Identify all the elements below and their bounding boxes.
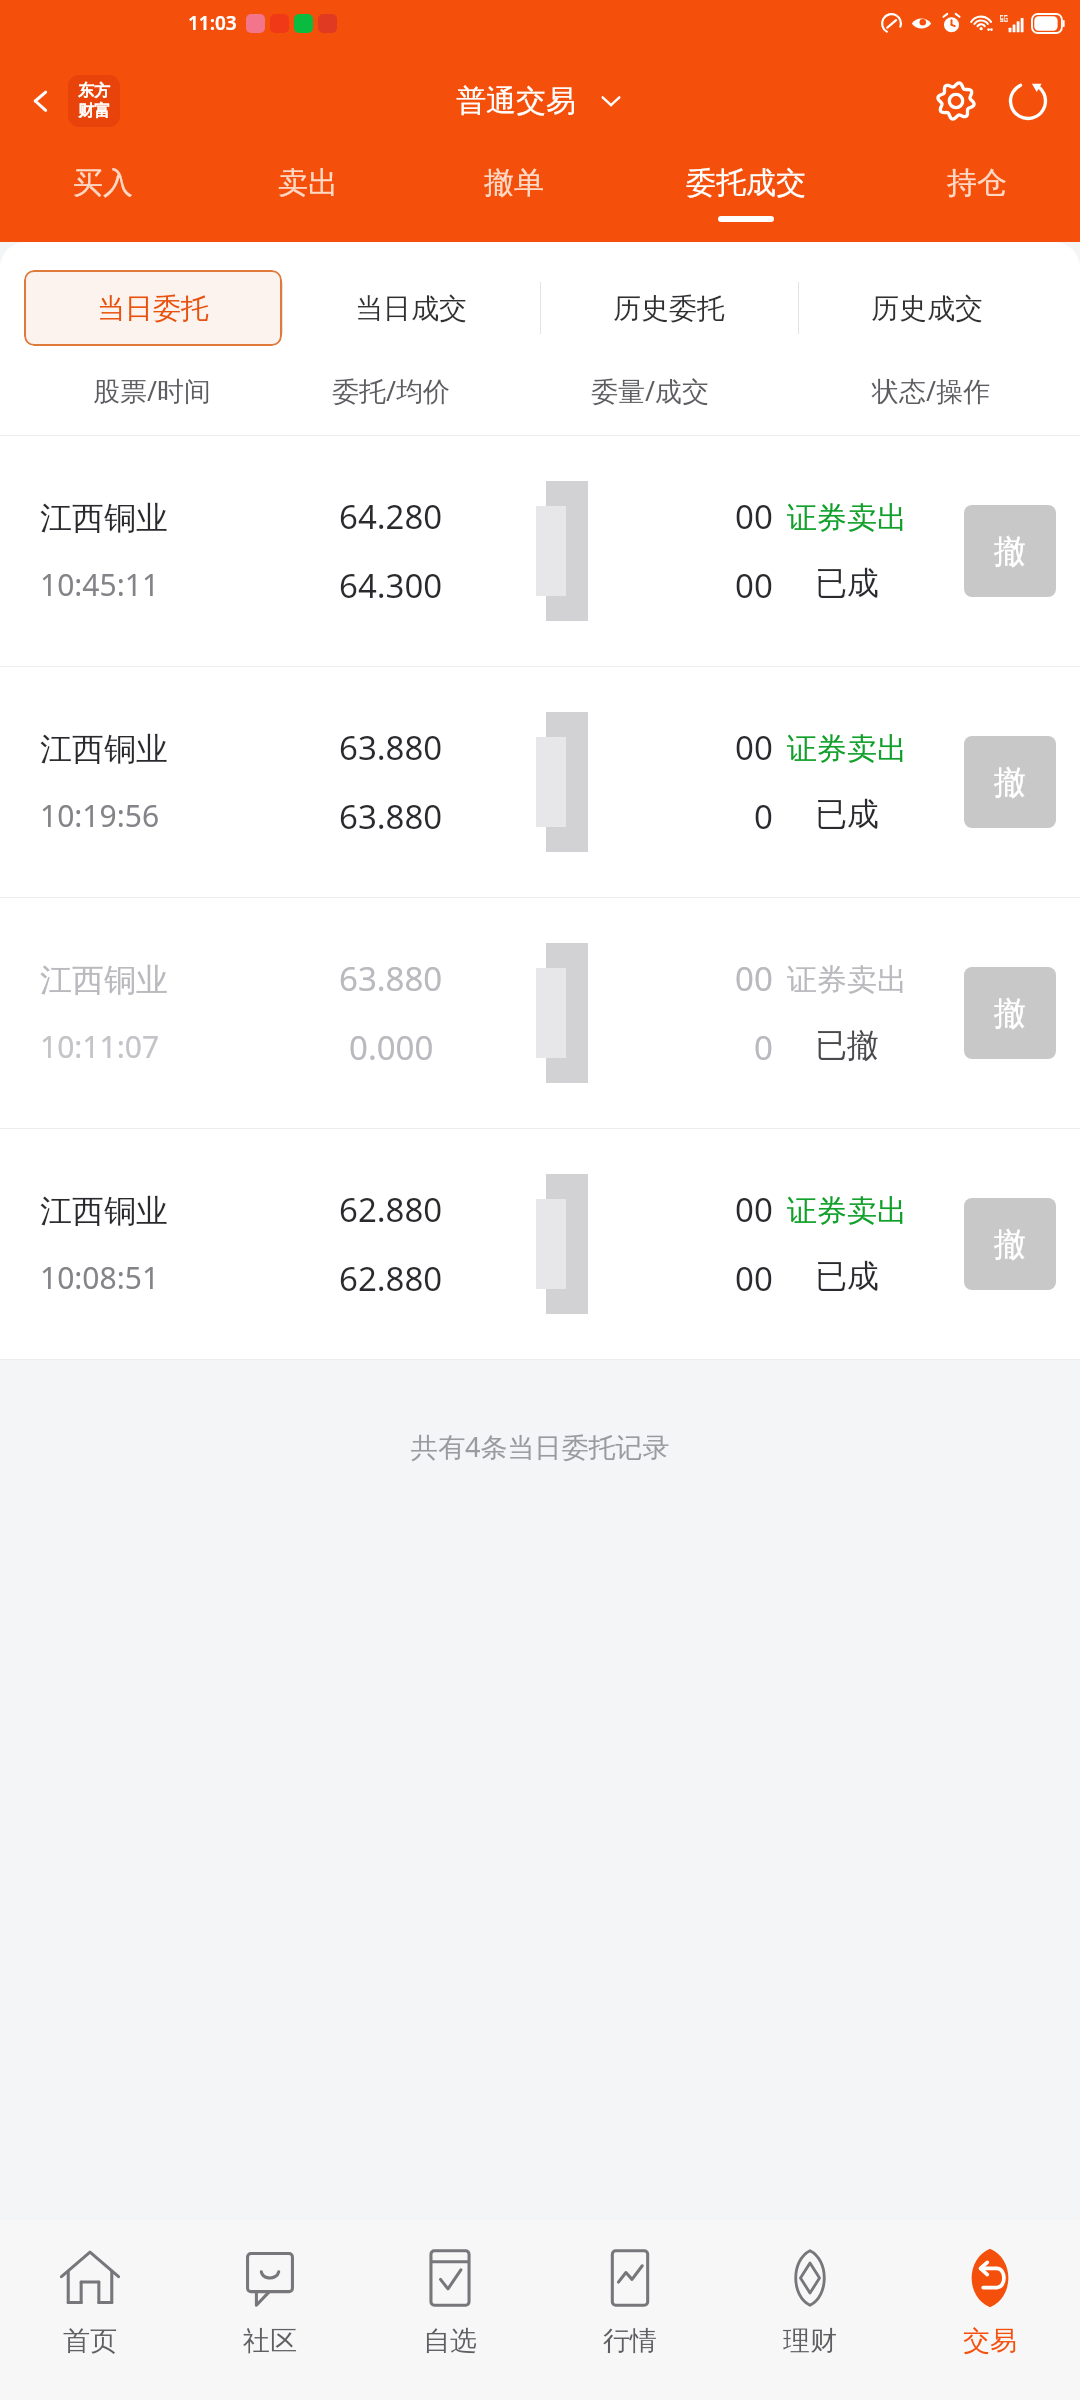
button[interactable]: 首页 <box>0 2242 180 2360</box>
staticText: 63.880 <box>339 794 443 839</box>
button[interactable]: 历史委托 <box>540 270 798 346</box>
staticText: 卖出 <box>278 164 338 202</box>
staticText: 首页 <box>63 2324 117 2358</box>
staticText: 交易 <box>963 2324 1017 2358</box>
button[interactable]: 当日成交 <box>282 270 540 346</box>
staticText: 股票/时间 <box>93 372 212 409</box>
staticText: 10:11:07 <box>40 1026 160 1067</box>
staticText: 当日成交 <box>355 291 467 326</box>
staticText: 委托成交 <box>686 164 806 202</box>
staticText: 0.000 <box>349 1025 434 1070</box>
staticText: 11:03 <box>188 10 237 36</box>
staticText: 社区 <box>243 2324 297 2358</box>
staticText: 江西铜业 <box>40 498 168 538</box>
button[interactable]: 社区 <box>180 2242 360 2360</box>
button[interactable]: 买入 <box>0 160 205 226</box>
staticText: 证券卖出 <box>787 961 907 999</box>
staticText: 62.880 <box>339 1187 443 1232</box>
staticText: 行情 <box>603 2324 657 2358</box>
staticText: 00 <box>735 1256 773 1301</box>
staticText: 江西铜业 <box>40 729 168 769</box>
staticText: 撤单 <box>484 164 544 202</box>
button[interactable]: 卖出 <box>205 160 411 226</box>
staticText: 00 <box>735 563 773 608</box>
staticText: 撤 <box>994 531 1026 571</box>
staticText: 64.280 <box>339 494 443 539</box>
staticText: 64.300 <box>339 563 443 608</box>
staticText: 撤 <box>994 762 1026 802</box>
staticText: 00 <box>735 956 773 1001</box>
button[interactable]: 当日委托 <box>24 270 282 346</box>
staticText: 历史成交 <box>871 291 983 326</box>
staticText: 已撤 <box>815 1025 879 1065</box>
staticText: 62.880 <box>339 1256 443 1301</box>
staticText: 委量/成交 <box>591 372 710 409</box>
button[interactable]: 刷新 <box>1002 75 1054 127</box>
button[interactable]: 撤 <box>964 967 1056 1059</box>
button[interactable]: 交易 <box>900 2242 1080 2360</box>
staticText: 历史委托 <box>613 291 725 326</box>
button[interactable]: 设置 <box>930 75 982 127</box>
button[interactable]: 江西铜业 <box>0 898 1080 1128</box>
button[interactable]: 江西铜业 <box>0 1129 1080 1359</box>
staticText: 已成 <box>815 1256 879 1296</box>
staticText: 状态/操作 <box>872 372 991 409</box>
button[interactable]: 返回 东方财富 <box>24 71 124 131</box>
button[interactable]: 自选 <box>360 2242 540 2360</box>
staticText: 撤 <box>994 1224 1026 1264</box>
button[interactable]: 历史成交 <box>798 270 1056 346</box>
button[interactable]: 理财 <box>720 2242 900 2360</box>
button[interactable]: 江西铜业 <box>0 667 1080 897</box>
button[interactable]: 行情 <box>540 2242 720 2360</box>
staticText: 已成 <box>815 563 879 603</box>
staticText: 证券卖出 <box>787 1192 907 1230</box>
staticText: 证券卖出 <box>787 499 907 537</box>
staticText: 10:08:51 <box>40 1257 160 1298</box>
staticText: 理财 <box>783 2324 837 2358</box>
staticText: 已成 <box>815 794 879 834</box>
button[interactable]: 撤 <box>964 1198 1056 1290</box>
staticText: 财富 <box>78 101 110 121</box>
staticText: 00 <box>735 494 773 539</box>
staticText: 00 <box>735 725 773 770</box>
button[interactable]: 江西铜业 <box>0 436 1080 666</box>
staticText: 证券卖出 <box>787 730 907 768</box>
button[interactable]: 持仓 <box>874 160 1080 226</box>
staticText: 买入 <box>73 164 133 202</box>
staticText: 江西铜业 <box>40 960 168 1000</box>
staticText: 普通交易 <box>456 82 576 120</box>
button[interactable]: 普通交易 <box>456 82 624 120</box>
staticText: 0 <box>754 1025 773 1070</box>
staticText: 00 <box>735 1187 773 1232</box>
button[interactable]: 撤单 <box>411 160 617 226</box>
staticText: 共有4条当日委托记录 <box>411 1428 670 1465</box>
staticText: 63.880 <box>339 956 443 1001</box>
button[interactable]: 撤 <box>964 736 1056 828</box>
button[interactable]: 撤 <box>964 505 1056 597</box>
staticText: 委托/均价 <box>332 372 451 409</box>
staticText: 持仓 <box>947 164 1007 202</box>
staticText: 63.880 <box>339 725 443 770</box>
staticText: 10:19:56 <box>40 795 160 836</box>
staticText: 江西铜业 <box>40 1191 168 1231</box>
staticText: 0 <box>754 794 773 839</box>
staticText: 自选 <box>423 2324 477 2358</box>
staticText: 10:45:11 <box>40 564 160 605</box>
button[interactable]: 委托成交 <box>617 160 874 226</box>
staticText: 撤 <box>994 993 1026 1033</box>
staticText: 当日委托 <box>97 291 209 326</box>
staticText: 东方 <box>78 81 110 101</box>
